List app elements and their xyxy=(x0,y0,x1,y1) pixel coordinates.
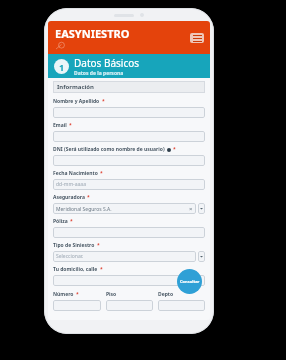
button[interactable] xyxy=(106,300,153,311)
staticText: * xyxy=(173,146,176,153)
staticText: * xyxy=(69,122,72,129)
button[interactable] xyxy=(53,275,205,286)
staticText: Meridional Seguros S.A. xyxy=(56,206,189,213)
staticText: Seleccionar. xyxy=(56,253,193,260)
staticText: Email xyxy=(53,122,67,129)
button[interactable] xyxy=(53,155,205,166)
button[interactable] xyxy=(53,107,205,118)
staticText: * xyxy=(100,170,103,177)
staticText: dd-mm-aaaa xyxy=(56,181,202,188)
staticText: Póliza xyxy=(53,218,68,225)
button[interactable] xyxy=(53,300,101,311)
button[interactable]: Consultar xyxy=(177,269,202,294)
staticText: * xyxy=(87,194,90,201)
staticText: * xyxy=(70,218,73,225)
staticText: Fecha Nacimiento xyxy=(53,170,98,177)
button[interactable]: 1 xyxy=(54,54,210,78)
staticText: Depto xyxy=(158,291,174,298)
button[interactable] xyxy=(158,300,205,311)
button[interactable]: Menú xyxy=(190,33,204,43)
staticText: * xyxy=(97,242,100,249)
staticText: × xyxy=(189,205,193,213)
button[interactable]: dd-mm-aaaa xyxy=(53,179,205,190)
staticText: * xyxy=(100,266,103,273)
staticText: Tu domicilio, calle xyxy=(53,266,98,273)
staticText: Datos de la persona xyxy=(74,70,124,77)
staticText: Consultar xyxy=(180,279,200,284)
button[interactable] xyxy=(53,227,205,238)
button[interactable]: Abrir lista xyxy=(198,251,205,262)
staticText: Aseguradora xyxy=(53,194,85,201)
staticText: DNI (Será utilizado como nombre de usuar… xyxy=(53,146,165,153)
button[interactable] xyxy=(53,131,205,142)
button[interactable]: Meridional Seguros S.A. xyxy=(53,203,196,214)
staticText: Datos Básicos xyxy=(74,56,140,70)
staticText: Información xyxy=(57,83,94,91)
staticText: EASYNIESTRO xyxy=(55,26,130,41)
staticText: Número xyxy=(53,291,74,298)
staticText: Piso xyxy=(106,291,117,298)
staticText: Nombre y Apellido xyxy=(53,98,100,105)
button[interactable]: Abrir lista xyxy=(198,203,205,214)
staticText: 1 xyxy=(59,61,65,73)
staticText: * xyxy=(102,98,105,105)
button[interactable]: Seleccionar. xyxy=(53,251,196,262)
staticText: Tipo de Siniestro xyxy=(53,242,95,249)
staticText: * xyxy=(76,291,79,298)
